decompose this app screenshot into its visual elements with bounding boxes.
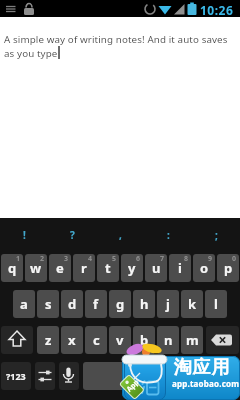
button[interactable]: u [145,254,167,282]
staticText: n [164,331,173,349]
staticText: 4 [88,254,93,264]
button[interactable]: ; [192,226,240,244]
button[interactable]: z [37,326,59,354]
staticText: x [68,331,76,349]
staticText: 7 [160,254,165,264]
staticText: h [140,295,149,313]
button[interactable] [0,218,240,400]
staticText: 1 [16,254,21,264]
staticText: , [119,228,122,242]
staticText: o [200,259,209,277]
staticText: v [116,331,124,349]
button[interactable]: g [109,290,131,318]
staticText: t [105,259,111,277]
staticText: y [128,259,136,277]
staticText: App [124,377,141,394]
staticText: e [56,259,64,277]
staticText: 2 [40,254,45,264]
button[interactable]: c [85,326,107,354]
staticText: w [30,259,42,277]
staticText: k [188,295,197,313]
button[interactable]: h [133,290,155,318]
button[interactable] [83,362,167,390]
staticText: 9 [208,254,213,264]
button[interactable]: i [169,254,191,282]
button[interactable]: : [144,226,192,244]
button[interactable] [206,326,239,354]
button[interactable]: l [205,290,227,318]
button[interactable] [59,362,79,390]
button[interactable]: x [61,326,83,354]
button[interactable]: d [61,290,83,318]
staticText: 0 [232,254,237,264]
staticText: m [186,331,199,349]
staticText: s [45,295,52,313]
button[interactable]: w [25,254,47,282]
staticText: f [93,295,99,313]
staticText: a [20,295,28,313]
staticText: ?123 [6,370,26,382]
button[interactable]: v [109,326,131,354]
staticText: g [116,295,125,313]
staticText: q [8,259,17,277]
button[interactable]: s [37,290,59,318]
button[interactable]: a [13,290,35,318]
button[interactable]: r [73,254,95,282]
button[interactable] [122,356,240,400]
staticText: : [167,228,170,242]
staticText: c [93,331,100,349]
staticText: 8 [184,254,189,264]
staticText: 10:26 [200,2,234,18]
button[interactable]: n [157,326,179,354]
staticText: app.taobao.com [172,378,240,389]
staticText: 淘应用 [173,356,230,379]
button[interactable]: t [97,254,119,282]
button[interactable]: m [181,326,203,354]
staticText: ? [70,228,75,242]
button[interactable] [195,362,240,390]
staticText: u [152,259,161,277]
button[interactable]: e [49,254,71,282]
staticText: 3 [64,254,69,264]
staticText: . [179,367,183,385]
button[interactable]: k [181,290,203,318]
staticText: j [166,295,170,313]
button[interactable]: f [85,290,107,318]
button[interactable]: b [133,326,155,354]
button[interactable]: q [1,254,23,282]
staticText: ! [23,228,26,242]
button[interactable]: ?123 [1,362,31,390]
staticText: r [81,259,87,277]
button[interactable]: , [96,226,144,244]
button[interactable] [35,362,55,390]
staticText: i [178,259,182,277]
button[interactable]: ! [0,226,48,244]
button[interactable]: p [217,254,239,282]
staticText: p [224,259,233,277]
button[interactable]: . [171,362,191,390]
button[interactable] [1,326,33,354]
staticText: 5 [112,254,117,264]
staticText: l [214,295,218,313]
button[interactable]: ? [48,226,96,244]
staticText: 6 [136,254,141,264]
staticText: ; [215,228,218,242]
button[interactable]: j [157,290,179,318]
staticText: A simple way of writing notes! And it au… [4,33,228,60]
staticText: d [68,295,77,313]
button[interactable]: o [193,254,215,282]
staticText: b [140,331,149,349]
button[interactable]: y [121,254,143,282]
staticText: z [45,331,52,349]
